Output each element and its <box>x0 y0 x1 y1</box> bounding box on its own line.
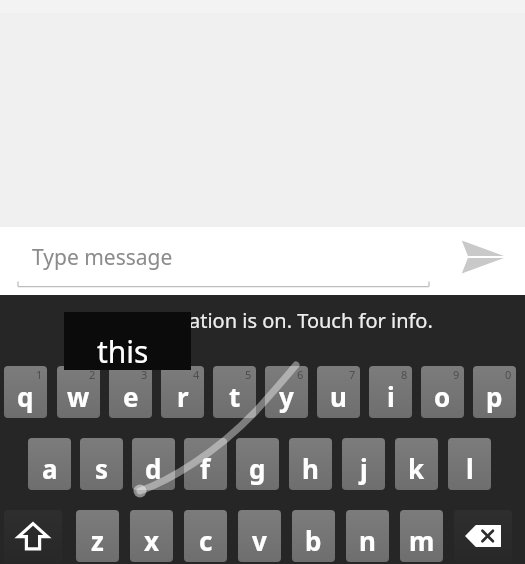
staticText: m <box>409 523 435 558</box>
staticText: j <box>360 451 368 486</box>
staticText: r <box>177 379 189 414</box>
staticText: Personalisation is on. Touch for info. <box>92 307 433 334</box>
button[interactable]: 6 <box>265 366 308 418</box>
button[interactable]: Backspace <box>454 510 512 562</box>
staticText: g <box>249 451 266 486</box>
staticText: v <box>252 523 267 558</box>
staticText: 8 <box>401 367 408 382</box>
button[interactable]: x <box>130 510 173 562</box>
button[interactable]: z <box>76 510 119 562</box>
staticText: l <box>466 451 474 486</box>
staticText: s <box>95 451 109 486</box>
staticText: o <box>434 379 451 414</box>
button[interactable]: d <box>132 438 175 490</box>
button[interactable]: h <box>289 438 332 490</box>
staticText: 7 <box>349 367 356 382</box>
staticText: h <box>302 451 319 486</box>
staticText: c <box>199 523 213 558</box>
staticText: f <box>200 451 211 486</box>
button[interactable]: 9 <box>421 366 464 418</box>
staticText: e <box>123 379 139 414</box>
button[interactable]: 0 <box>473 366 516 418</box>
button[interactable]: m <box>400 510 443 562</box>
button[interactable]: 2 <box>57 366 100 418</box>
button[interactable]: 3 <box>109 366 152 418</box>
staticText: 3 <box>141 367 148 382</box>
staticText: z <box>91 523 104 558</box>
button[interactable]: 8 <box>369 366 412 418</box>
staticText: Type message <box>32 243 173 272</box>
button[interactable]: Type message <box>18 227 429 295</box>
staticText: k <box>408 451 425 486</box>
button[interactable]: g <box>236 438 279 490</box>
staticText: 9 <box>453 367 460 382</box>
staticText: y <box>279 379 294 414</box>
button[interactable]: b <box>292 510 335 562</box>
staticText: 4 <box>193 367 200 382</box>
staticText: a <box>42 451 58 486</box>
button[interactable]: 7 <box>317 366 360 418</box>
button[interactable]: s <box>80 438 123 490</box>
button[interactable]: j <box>342 438 385 490</box>
button[interactable]: v <box>238 510 281 562</box>
staticText: 0 <box>505 367 512 382</box>
staticText: 6 <box>297 367 304 382</box>
button[interactable]: Personalisation is on. Touch for info. <box>0 295 525 366</box>
staticText: d <box>145 451 162 486</box>
staticText: x <box>144 523 160 558</box>
staticText: p <box>486 379 503 414</box>
staticText: t <box>229 379 241 414</box>
button[interactable]: k <box>395 438 438 490</box>
staticText: this <box>97 331 149 372</box>
staticText: i <box>387 379 395 414</box>
staticText: 5 <box>245 367 252 382</box>
staticText: w <box>67 379 90 414</box>
button[interactable]: l <box>448 438 491 490</box>
button[interactable]: n <box>346 510 389 562</box>
staticText: b <box>305 523 322 558</box>
staticText: 2 <box>89 367 96 382</box>
staticText: q <box>17 379 34 414</box>
button[interactable]: c <box>184 510 227 562</box>
button[interactable]: 1 <box>4 366 47 418</box>
button[interactable]: 4 <box>161 366 204 418</box>
staticText: 1 <box>36 367 43 382</box>
button[interactable]: 5 <box>213 366 256 418</box>
staticText: u <box>330 379 347 414</box>
button[interactable]: Shift <box>4 510 62 562</box>
button[interactable]: a <box>28 438 71 490</box>
button[interactable]: Send <box>439 227 525 295</box>
staticText: n <box>359 523 376 558</box>
button[interactable]: f <box>184 438 227 490</box>
